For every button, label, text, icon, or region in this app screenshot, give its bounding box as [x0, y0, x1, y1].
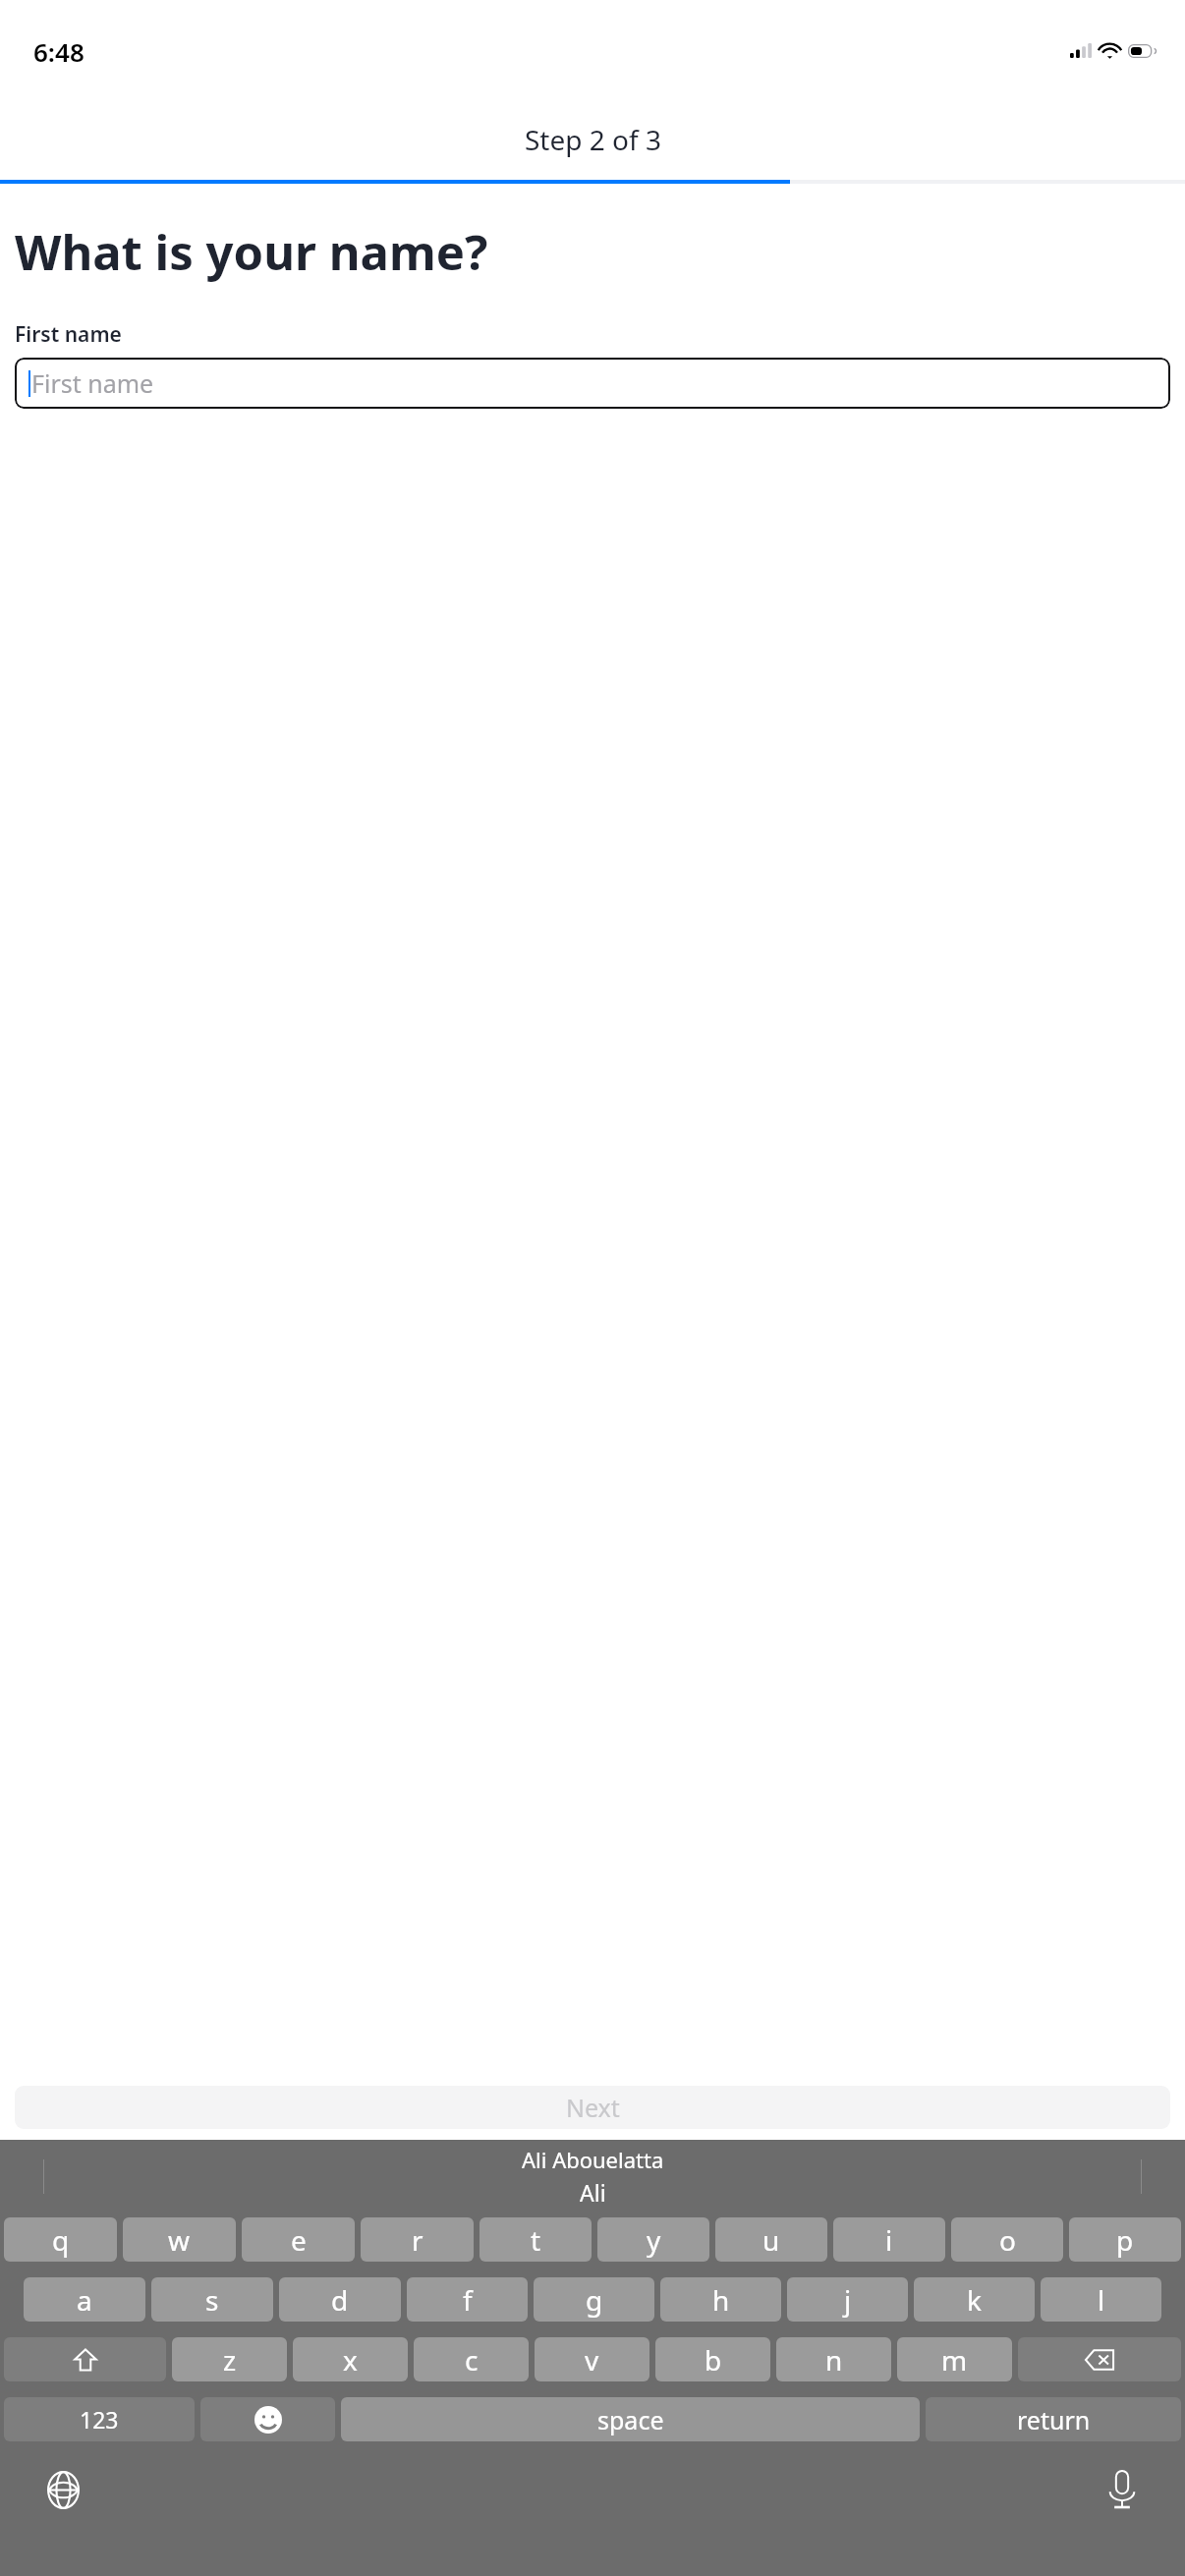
- button[interactable]: z: [172, 2337, 287, 2381]
- staticText: Step 2 of 3: [525, 121, 661, 158]
- button[interactable]: s: [151, 2277, 273, 2322]
- staticText: b: [705, 2341, 722, 2379]
- button[interactable]: return: [926, 2397, 1181, 2441]
- staticText: z: [223, 2341, 237, 2379]
- staticText: Next: [566, 2091, 620, 2124]
- staticText: e: [291, 2221, 307, 2259]
- button[interactable]: Backspace: [1018, 2337, 1181, 2381]
- button[interactable]: First name: [15, 358, 1170, 409]
- staticText: w: [168, 2221, 191, 2259]
- button[interactable]: a: [24, 2277, 145, 2322]
- button[interactable]: p: [1069, 2217, 1181, 2262]
- button[interactable]: Voice input: [1095, 2462, 1150, 2517]
- staticText: c: [465, 2341, 479, 2379]
- staticText: h: [712, 2281, 730, 2319]
- staticText: 6:48: [33, 34, 85, 69]
- staticText: First name: [15, 320, 122, 349]
- staticText: Ali Abouelatta: [522, 2145, 664, 2174]
- button[interactable]: u: [715, 2217, 827, 2262]
- button[interactable]: o: [951, 2217, 1063, 2262]
- staticText: d: [331, 2281, 349, 2319]
- button[interactable]: t: [480, 2217, 592, 2262]
- staticText: First name: [31, 366, 154, 400]
- staticText: q: [52, 2221, 70, 2259]
- staticText: a: [77, 2281, 92, 2319]
- button[interactable]: x: [293, 2337, 408, 2381]
- staticText: m: [941, 2341, 968, 2379]
- staticText: y: [647, 2221, 661, 2259]
- button[interactable]: b: [655, 2337, 770, 2381]
- staticText: k: [967, 2281, 982, 2319]
- button[interactable]: Shift: [4, 2337, 166, 2381]
- staticText: o: [999, 2221, 1016, 2259]
- staticText: What is your name?: [15, 219, 488, 285]
- button[interactable]: k: [914, 2277, 1035, 2322]
- staticText: 123: [80, 2404, 119, 2435]
- staticText: Ali: [580, 2177, 606, 2208]
- staticText: s: [205, 2281, 219, 2319]
- button[interactable]: Change keyboard language: [35, 2462, 90, 2517]
- staticText: f: [463, 2281, 473, 2319]
- button[interactable]: i: [833, 2217, 945, 2262]
- staticText: v: [585, 2341, 599, 2379]
- staticText: return: [1017, 2403, 1091, 2436]
- staticText: n: [825, 2341, 843, 2379]
- button[interactable]: j: [787, 2277, 908, 2322]
- staticText: x: [343, 2341, 358, 2379]
- staticText: t: [531, 2221, 541, 2259]
- button[interactable]: q: [4, 2217, 117, 2262]
- button[interactable]: m: [897, 2337, 1012, 2381]
- button[interactable]: r: [361, 2217, 474, 2262]
- button[interactable]: h: [660, 2277, 781, 2322]
- button[interactable]: e: [242, 2217, 355, 2262]
- button[interactable]: space: [341, 2397, 920, 2441]
- button[interactable]: 123: [4, 2397, 195, 2441]
- button[interactable]: f: [407, 2277, 528, 2322]
- button[interactable]: d: [279, 2277, 401, 2322]
- button[interactable]: Ali Abouelatta: [522, 2145, 664, 2208]
- staticText: g: [586, 2281, 603, 2319]
- button[interactable]: y: [597, 2217, 709, 2262]
- staticText: p: [1116, 2221, 1134, 2259]
- button[interactable]: Emoji: [200, 2397, 335, 2441]
- button[interactable]: g: [534, 2277, 654, 2322]
- staticText: j: [844, 2281, 852, 2319]
- staticText: i: [885, 2221, 893, 2259]
- button[interactable]: Next: [15, 2086, 1170, 2129]
- button[interactable]: v: [535, 2337, 649, 2381]
- staticText: r: [412, 2221, 423, 2259]
- staticText: l: [1098, 2281, 1105, 2319]
- button[interactable]: c: [414, 2337, 529, 2381]
- button[interactable]: n: [776, 2337, 891, 2381]
- button[interactable]: l: [1041, 2277, 1161, 2322]
- staticText: u: [762, 2221, 780, 2259]
- staticText: space: [597, 2403, 664, 2436]
- button[interactable]: w: [123, 2217, 236, 2262]
